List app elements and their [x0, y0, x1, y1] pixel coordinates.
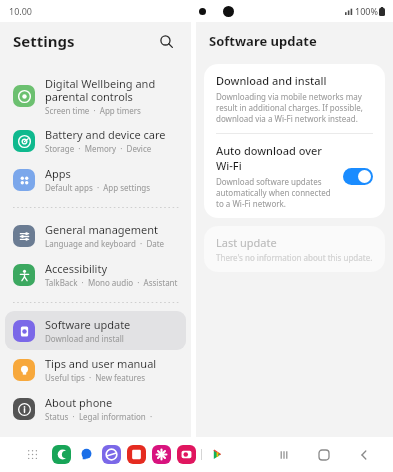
staticText: Default apps · App settings [45, 182, 151, 193]
button[interactable]: Apps [5, 160, 186, 199]
staticText: Status · Legal information · Phone name [45, 411, 178, 422]
button[interactable]: Phone [52, 445, 71, 464]
staticText: Storage · Memory · Device protection [45, 143, 178, 154]
staticText: Download and install [45, 333, 124, 344]
staticText: Tips and user manual [45, 356, 157, 371]
staticText: Useful tips · New features [45, 372, 146, 383]
button[interactable]: Home [313, 444, 335, 466]
staticText: Software update [209, 32, 317, 50]
staticText: Download and install [216, 73, 327, 88]
staticText: About phone [45, 395, 113, 410]
staticText: Accessibility [45, 261, 108, 276]
button[interactable]: Gallery [152, 445, 171, 464]
staticText: Digital Wellbeing and parental controls [45, 76, 178, 104]
button[interactable]: Digital Wellbeing and parental controls [5, 71, 186, 121]
staticText: General management [45, 222, 159, 237]
button[interactable]: Last update [204, 226, 385, 272]
staticText: Settings [13, 31, 75, 51]
staticText: Apps [45, 166, 71, 181]
staticText: Screen time · App timers [45, 105, 141, 116]
staticText: 10.00 [9, 5, 33, 17]
button[interactable]: App drawer [24, 446, 42, 464]
button[interactable]: Download and install [204, 64, 385, 133]
button[interactable]: Play Store [207, 445, 226, 464]
button[interactable]: Auto download over Wi-Fi toggle [343, 168, 373, 185]
button[interactable]: Messages [77, 445, 96, 464]
button[interactable]: Camera [177, 445, 196, 464]
button[interactable]: Notes [127, 445, 146, 464]
staticText: TalkBack · Mono audio · Assistant menu [45, 277, 178, 288]
button[interactable]: Accessibility [5, 255, 186, 294]
button[interactable]: Auto download over Wi-Fi [204, 134, 385, 218]
button[interactable]: Back [353, 444, 375, 466]
staticText: Downloading via mobile networks may resu… [216, 91, 373, 124]
button[interactable]: Search [153, 28, 179, 54]
staticText: Download software updates automatically … [216, 176, 337, 209]
staticText: Language and keyboard · Date and time [45, 238, 178, 249]
button[interactable]: Battery and device care [5, 121, 186, 160]
button[interactable]: General management [5, 216, 186, 255]
button[interactable]: About phone [5, 389, 186, 428]
staticText: Last update [216, 235, 277, 250]
staticText: 100% [355, 5, 378, 17]
staticText: There's no information about this update… [216, 252, 373, 263]
staticText: Software update [45, 317, 131, 332]
staticText: Battery and device care [45, 127, 166, 142]
button[interactable]: Software update [5, 311, 186, 350]
button[interactable]: Tips and user manual [5, 350, 186, 389]
button[interactable]: Recents [273, 444, 295, 466]
staticText: Auto download over Wi-Fi [216, 143, 337, 173]
button[interactable]: Internet [102, 445, 121, 464]
